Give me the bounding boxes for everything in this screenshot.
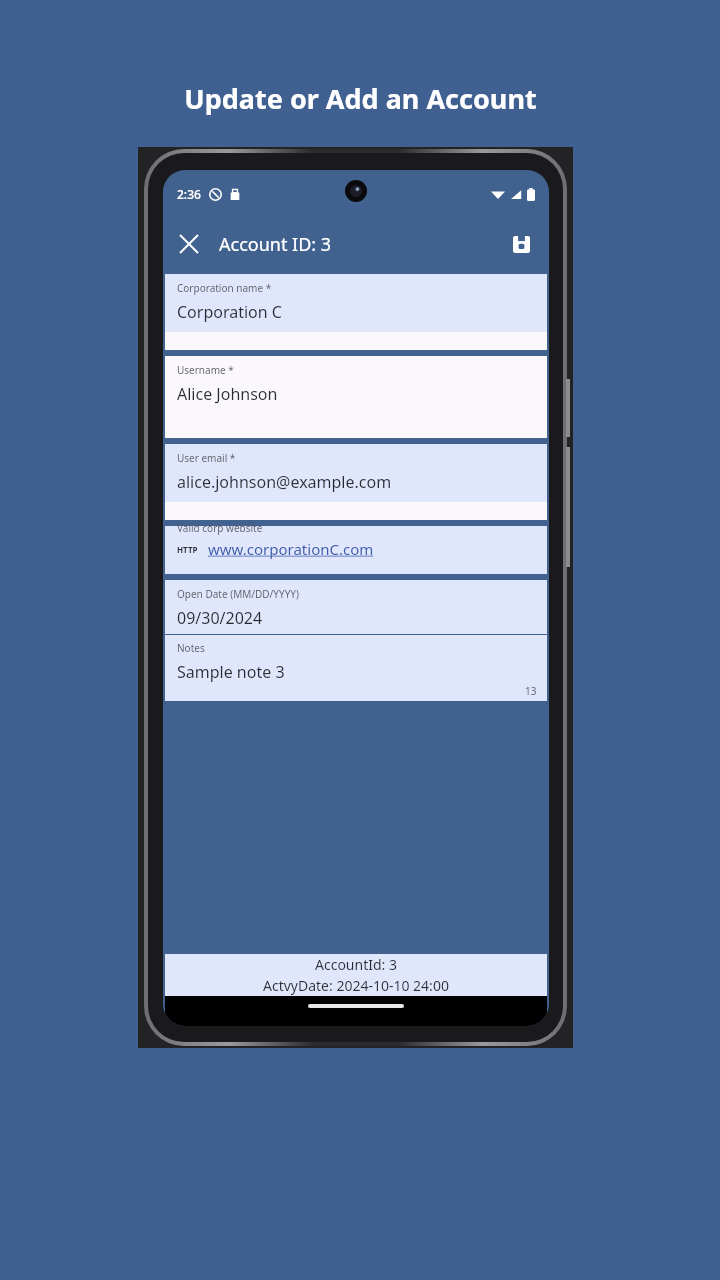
staticText: Corporation C (177, 301, 282, 323)
staticText: AccountId: 3 (315, 955, 397, 974)
staticText: Notes (177, 641, 205, 655)
staticText: User email * (177, 451, 236, 465)
staticText: Account ID: 3 (219, 232, 332, 257)
staticText: Valid corp website (177, 521, 263, 535)
button[interactable]: Notes (165, 635, 547, 701)
staticText: Alice Johnson (177, 383, 278, 405)
staticText: 13 (525, 684, 537, 698)
staticText: www.corporationC.com (208, 539, 374, 559)
staticText: Username * (177, 363, 234, 377)
staticText: Sample note 3 (177, 661, 285, 683)
button[interactable]: Open Date (MM/DD/YYYY) (165, 580, 547, 634)
staticText: 09/30/2024 (177, 607, 263, 629)
button[interactable]: Save (501, 224, 541, 264)
staticText: Open Date (MM/DD/YYYY) (177, 587, 299, 601)
staticText: Corporation name * (177, 281, 272, 295)
staticText: 2:36 (177, 186, 201, 202)
staticText: HTTP (177, 544, 198, 555)
button[interactable]: User email * (165, 444, 547, 520)
button[interactable]: Close (169, 224, 209, 264)
staticText: ActvyDate: 2024-10-10 24:00 (263, 976, 449, 995)
button[interactable]: Username * (165, 356, 547, 438)
button[interactable]: Corporation name * (165, 274, 547, 350)
button[interactable]: Valid corp website (165, 526, 547, 574)
staticText: alice.johnson@example.com (177, 471, 392, 493)
staticText: Update or Add an Account (184, 80, 537, 117)
